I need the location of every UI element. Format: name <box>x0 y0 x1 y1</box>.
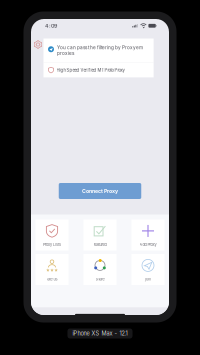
staticText: High Speed Verified MTProto Proxy <box>57 68 125 73</box>
staticText: rate us <box>46 277 57 281</box>
staticText: 4:09 <box>45 22 57 29</box>
staticText: join <box>145 277 151 281</box>
staticText: iPhone XS Max - 12.1 <box>72 330 127 337</box>
button[interactable]: Proxy Lists <box>35 219 68 250</box>
staticText: Add Proxy <box>139 242 156 247</box>
staticText: featured <box>93 242 106 247</box>
button[interactable]: featured <box>83 219 116 250</box>
staticText: share <box>95 277 104 281</box>
button[interactable]: Add Proxy <box>131 219 164 250</box>
staticText: Proxy Lists <box>43 242 61 247</box>
button[interactable]: Connect Proxy <box>59 183 141 199</box>
button[interactable]: join <box>131 254 164 285</box>
button[interactable]: share <box>83 254 116 285</box>
staticText: Connect Proxy <box>82 188 118 194</box>
staticText: You can pass the filtering by Proxyem pr… <box>57 45 143 56</box>
button[interactable]: rate us <box>35 254 68 285</box>
